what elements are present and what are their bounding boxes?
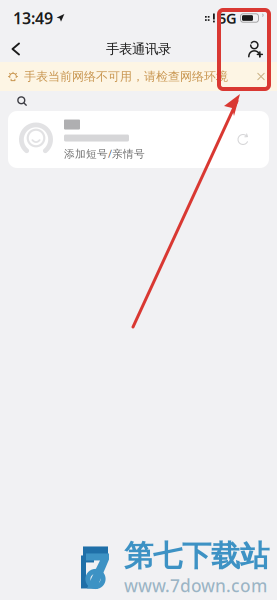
staticText: 手表当前网络不可用，请检查网络环境 xyxy=(24,69,228,84)
staticText: 13:49 xyxy=(13,7,53,29)
button[interactable]: 添加短号/亲情号 xyxy=(8,111,269,168)
button[interactable]: Add contact xyxy=(241,35,270,63)
button[interactable]: Dismiss xyxy=(253,68,269,84)
button[interactable]: Back xyxy=(0,35,32,63)
staticText: www.7down.com xyxy=(124,574,267,597)
staticText: 手表通讯录 xyxy=(106,41,171,57)
staticText: 第七下载站 xyxy=(124,538,269,574)
staticText: 添加短号/亲情号 xyxy=(64,146,145,161)
staticText: 5G xyxy=(218,8,237,28)
